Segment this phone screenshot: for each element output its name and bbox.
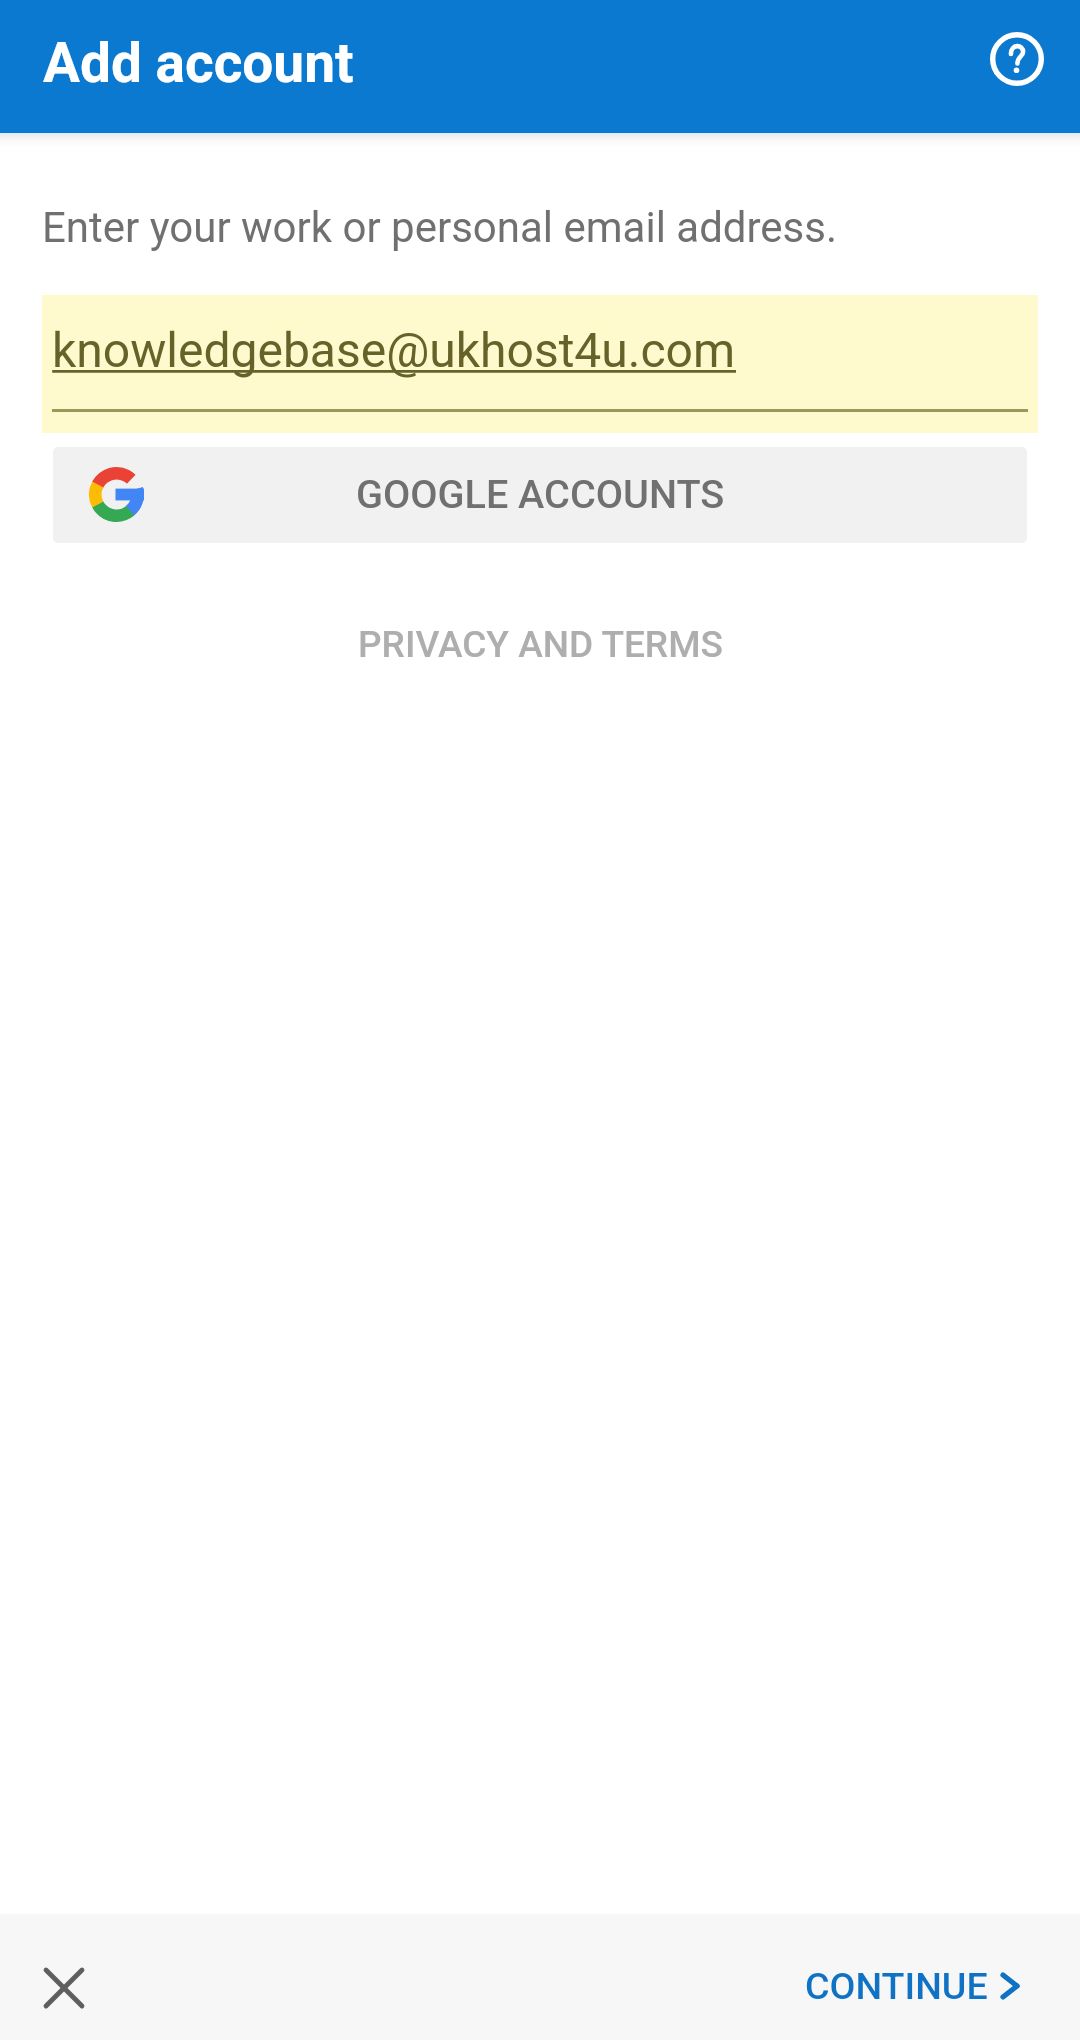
button[interactable]: Help: [973, 15, 1061, 103]
button[interactable]: PRIVACY AND TERMS: [338, 611, 743, 678]
staticText: Enter your work or personal email addres…: [42, 203, 838, 252]
staticText: GOOGLE ACCOUNTS: [356, 471, 725, 517]
button[interactable]: Close: [20, 1944, 107, 2031]
staticText: knowledgebase@ukhost4u.com: [52, 322, 736, 378]
button[interactable]: knowledgebase@ukhost4u.com: [42, 295, 1038, 433]
staticText: PRIVACY AND TERMS: [358, 623, 723, 666]
button[interactable]: GOOGLE ACCOUNTS: [53, 447, 1027, 543]
button[interactable]: CONTINUE: [785, 1952, 1037, 2020]
staticText: Add account: [43, 31, 354, 95]
staticText: CONTINUE: [805, 1964, 988, 2008]
